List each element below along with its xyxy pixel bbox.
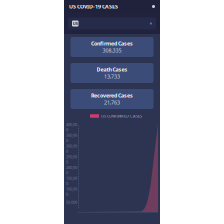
staticText: US — [73, 21, 78, 26]
staticText: 400,000 — [66, 122, 77, 132]
staticText: US CONFIRMED CASES — [101, 113, 142, 119]
button[interactable]: Confirmed Cases — [70, 37, 153, 57]
staticText: 250,000 — [66, 154, 77, 164]
button[interactable]: US COVID-19 Cases — [64, 0, 160, 13]
staticText: 100,000 — [66, 186, 77, 197]
staticText: Recovered Cases — [91, 92, 133, 99]
staticText: 308,335 — [102, 47, 121, 54]
staticText: 150,000 — [66, 175, 77, 186]
staticText: 13,733 — [104, 73, 120, 80]
staticText: US COVID-19 CASES — [69, 3, 118, 10]
button[interactable]: Select region: US — [64, 13, 160, 34]
button[interactable]: Death Cases — [70, 63, 153, 83]
staticText: 50,000 — [66, 200, 77, 205]
staticText: 200,000 — [66, 165, 77, 175]
staticText: 300,000 — [66, 143, 77, 154]
staticText: Confirmed Cases — [91, 40, 133, 47]
staticText: 21,763 — [104, 99, 120, 106]
staticText: Death Cases — [96, 66, 127, 73]
button[interactable]: Recovered Cases — [70, 89, 153, 109]
staticText: 350,000 — [66, 132, 77, 143]
